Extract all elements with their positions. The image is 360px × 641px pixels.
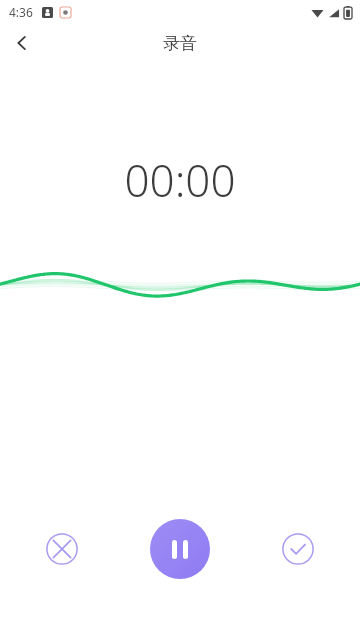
staticText: 4:36 xyxy=(9,4,33,20)
button[interactable]: Cancel recording xyxy=(40,527,84,571)
button[interactable]: Finish recording xyxy=(276,527,320,571)
staticText: 录音 xyxy=(163,33,197,54)
button[interactable]: Pause xyxy=(150,519,210,579)
staticText: 00:00 xyxy=(124,150,236,200)
button[interactable]: Back xyxy=(0,24,44,62)
